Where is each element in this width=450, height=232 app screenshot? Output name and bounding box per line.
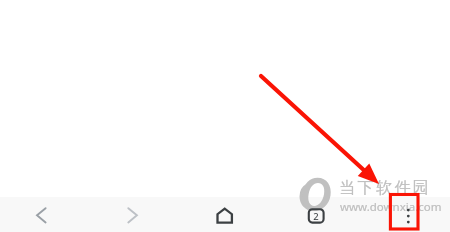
button[interactable]: Forward: [115, 198, 149, 232]
staticText: 当下软件园: [338, 178, 430, 198]
staticText: www.downxia.com: [340, 199, 442, 215]
button[interactable]: Home: [208, 199, 242, 232]
button[interactable]: Back: [24, 198, 58, 232]
button[interactable]: Tabs: [299, 199, 333, 232]
staticText: 2: [313, 210, 319, 223]
button[interactable]: More options: [392, 200, 424, 232]
